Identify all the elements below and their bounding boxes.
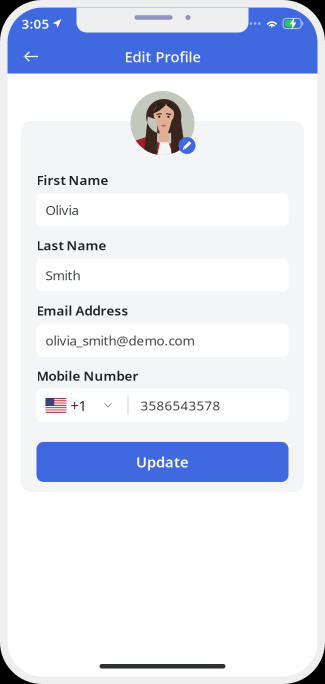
staticText: Mobile Number (36, 367, 138, 384)
staticText: 3586543578 (140, 397, 220, 414)
button[interactable]: Update (36, 442, 288, 482)
button[interactable]: Back (13, 39, 47, 73)
staticText: olivia_smith@demo.com (45, 331, 194, 349)
staticText: Last Name (36, 236, 106, 254)
staticText: Smith (45, 266, 80, 284)
staticText: 3:05 (21, 15, 49, 32)
staticText: First Name (36, 171, 108, 189)
staticText: Update (136, 452, 189, 472)
staticText: Email Address (36, 301, 128, 319)
staticText: Edit Profile (124, 47, 200, 66)
staticText: Olivia (45, 201, 78, 219)
staticText: +1 (70, 396, 86, 415)
